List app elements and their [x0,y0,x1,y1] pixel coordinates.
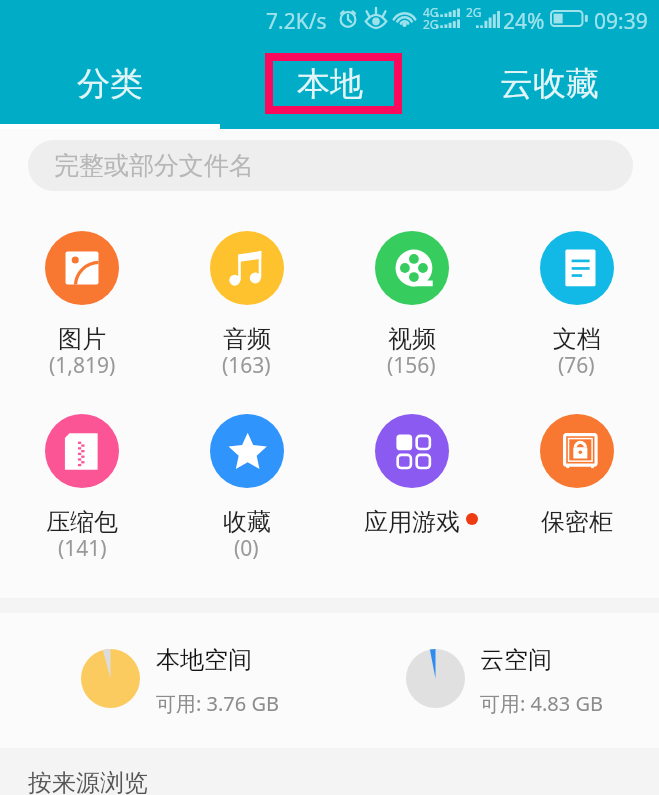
staticText: 完整或部分文件名 [54,150,254,181]
staticText: 文档 [553,324,601,354]
staticText: 2G [466,4,482,20]
staticText: 2G [423,16,439,32]
button[interactable]: 视频 [329,231,494,383]
staticText: 24% [503,7,545,36]
staticText: 视频 [388,324,436,354]
staticText: 压缩包 [46,507,118,537]
staticText: 云空间 [480,645,552,675]
staticText: (1,819) [49,351,116,380]
staticText: (163) [222,351,271,380]
button[interactable]: 音频 [164,231,329,383]
staticText: 7.2K/s [266,7,327,36]
staticText: 应用游戏 [364,507,460,537]
staticText: 云收藏 [500,63,599,105]
staticText: 保密柜 [541,507,613,537]
staticText: 09:39 [594,7,648,36]
staticText: 本地 [297,63,363,105]
staticText: 收藏 [223,507,271,537]
button[interactable]: 云空间 [329,613,659,748]
button[interactable]: 分类 [0,36,219,129]
staticText: 音频 [223,324,271,354]
staticText: (156) [387,351,436,380]
staticText: (0) [234,534,259,563]
staticText: 分类 [77,63,143,105]
staticText: 图片 [58,324,106,354]
staticText: (141) [58,534,107,563]
button[interactable]: 图片 [0,231,164,383]
button[interactable]: 文档 [494,231,659,383]
staticText: 可用: 4.83 GB [480,690,603,717]
staticText: 本地空间 [156,645,252,675]
button[interactable]: 收藏 [164,414,329,566]
button[interactable]: 完整或部分文件名 [28,140,633,191]
button[interactable]: 应用游戏 [329,414,494,537]
staticText: (76) [558,351,595,380]
button[interactable]: 本地 [219,36,439,129]
staticText: 可用: 3.76 GB [156,690,279,717]
button[interactable]: 压缩包 [0,414,164,566]
button[interactable]: 本地空间 [0,613,329,748]
button[interactable]: 云收藏 [439,36,659,129]
staticText: 4G [423,4,439,20]
button[interactable]: 保密柜 [494,414,659,537]
staticText: 按来源浏览 [28,768,148,795]
